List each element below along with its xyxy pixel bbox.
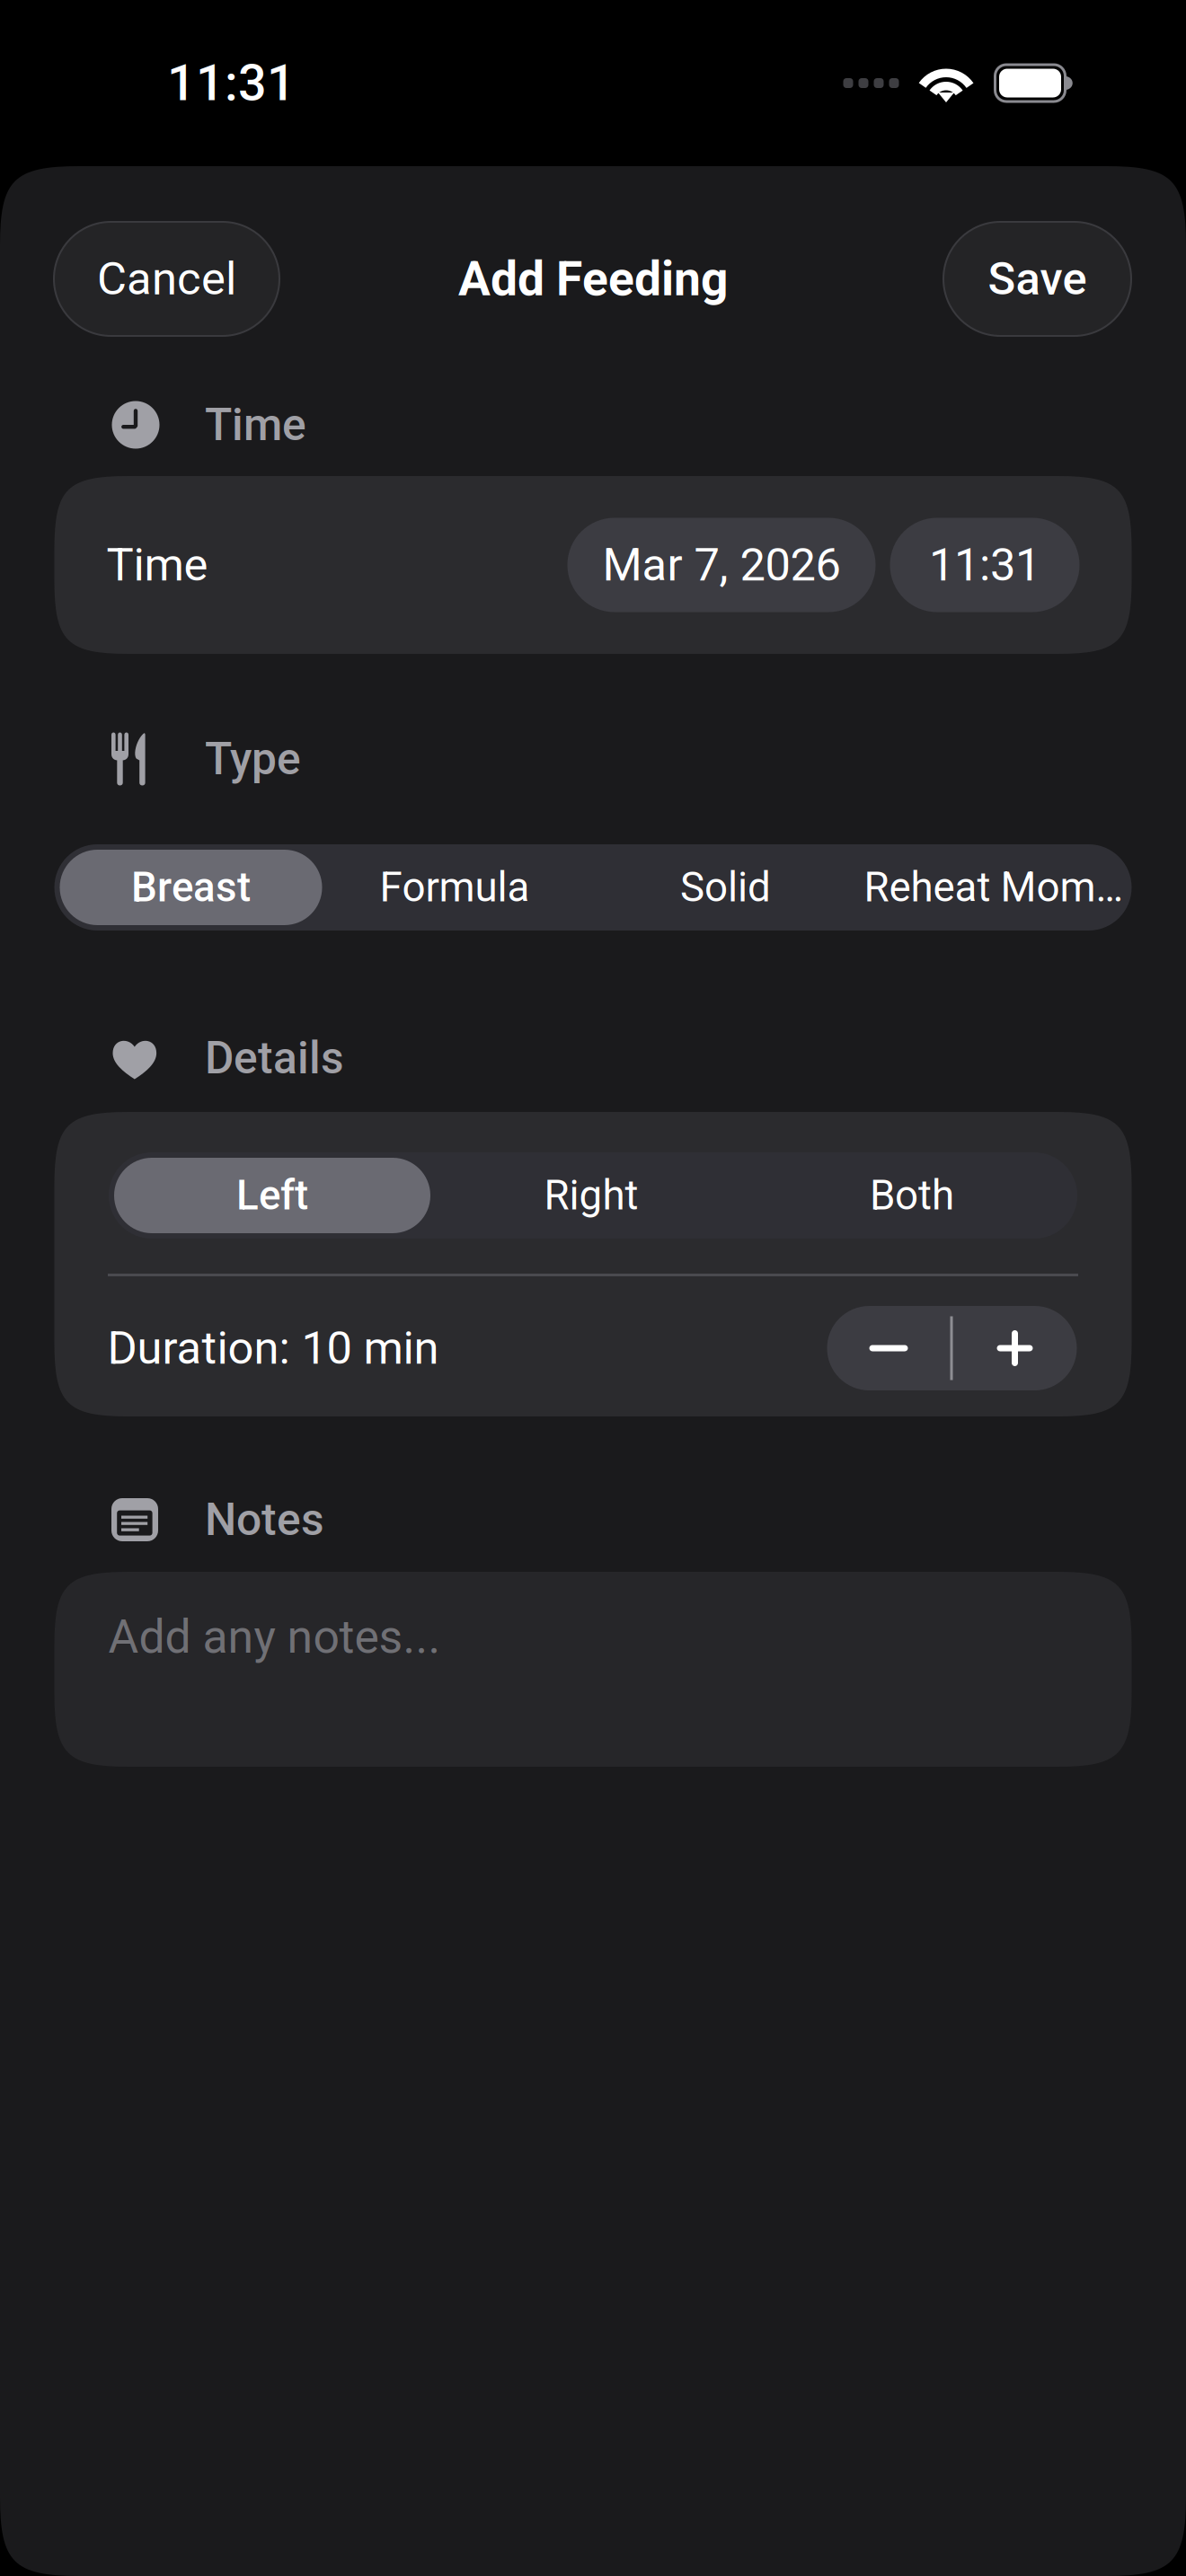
staticText: Formula xyxy=(380,863,530,911)
staticText: Left xyxy=(236,1171,308,1219)
staticText: Details xyxy=(205,1032,344,1084)
button[interactable]: Solid xyxy=(587,850,864,925)
button[interactable]: 11:31 xyxy=(890,518,1080,612)
staticText: Add Feeding xyxy=(458,251,728,307)
button[interactable]: Decrease duration xyxy=(827,1306,950,1390)
staticText: Notes xyxy=(205,1494,324,1546)
button[interactable]: Breast xyxy=(60,850,322,925)
button[interactable]: Reheat Mom... xyxy=(864,850,1126,925)
staticText: Type xyxy=(205,733,301,785)
button[interactable]: Both xyxy=(752,1158,1072,1233)
staticText: Mar 7, 2026 xyxy=(602,538,841,592)
button[interactable]: Add any notes... xyxy=(54,1572,1132,1767)
staticText: 11:31 xyxy=(167,54,296,112)
button[interactable]: Right xyxy=(430,1158,752,1233)
button[interactable]: Increase duration xyxy=(953,1306,1077,1390)
staticText: Right xyxy=(544,1171,638,1219)
staticText: 11:31 xyxy=(929,538,1040,592)
button[interactable]: Formula xyxy=(322,850,587,925)
staticText: Add any notes... xyxy=(108,1610,441,1664)
staticText: Cancel xyxy=(97,252,236,306)
button[interactable]: Save xyxy=(943,222,1131,336)
staticText: Solid xyxy=(680,863,771,911)
staticText: Breast xyxy=(131,863,251,911)
staticText: Both xyxy=(870,1171,954,1219)
staticText: Reheat Mom... xyxy=(864,863,1126,911)
button[interactable]: Mar 7, 2026 xyxy=(567,518,876,612)
staticText: Save xyxy=(988,252,1087,306)
staticText: Time xyxy=(205,399,306,451)
button[interactable]: Cancel xyxy=(54,222,279,336)
staticText: Time xyxy=(106,538,208,592)
staticText: Duration: 10 min xyxy=(107,1322,439,1375)
button[interactable]: Left xyxy=(114,1158,430,1233)
